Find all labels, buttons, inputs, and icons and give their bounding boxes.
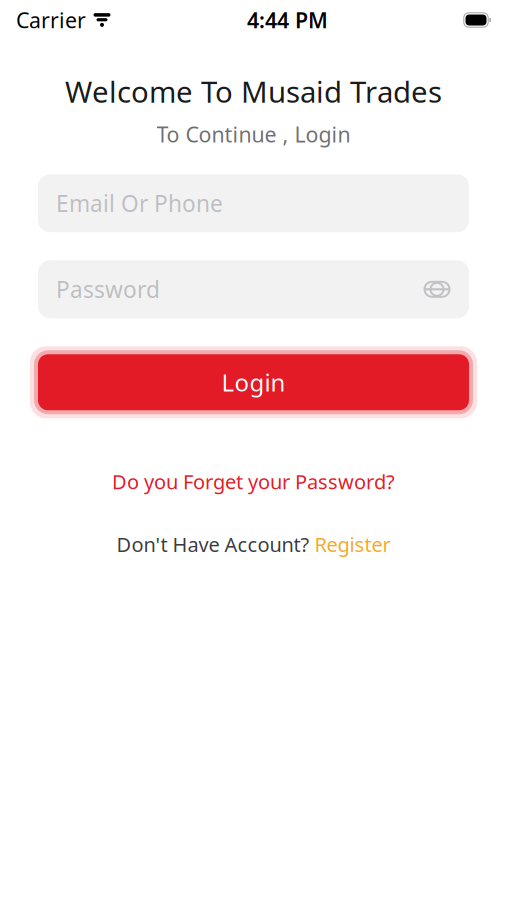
staticText: To Continue , Login — [156, 120, 350, 148]
button[interactable]: Email Or Phone — [38, 174, 469, 232]
staticText: Don't Have Account? — [116, 531, 309, 557]
staticText: Register — [314, 531, 390, 557]
button[interactable]: Login — [30, 346, 477, 418]
staticText: Carrier — [16, 6, 86, 34]
staticText: Do you Forget your Password? — [112, 468, 395, 495]
staticText: Password — [56, 274, 160, 304]
staticText: Login — [221, 366, 285, 398]
button[interactable]: Do you Forget your Password? — [102, 462, 405, 501]
staticText: Welcome To Musaid Trades — [65, 72, 442, 111]
staticText: Email Or Phone — [56, 188, 223, 218]
staticText: 4:44 PM — [247, 6, 328, 34]
button[interactable]: Password — [38, 260, 469, 318]
button[interactable]: Register — [314, 531, 390, 557]
